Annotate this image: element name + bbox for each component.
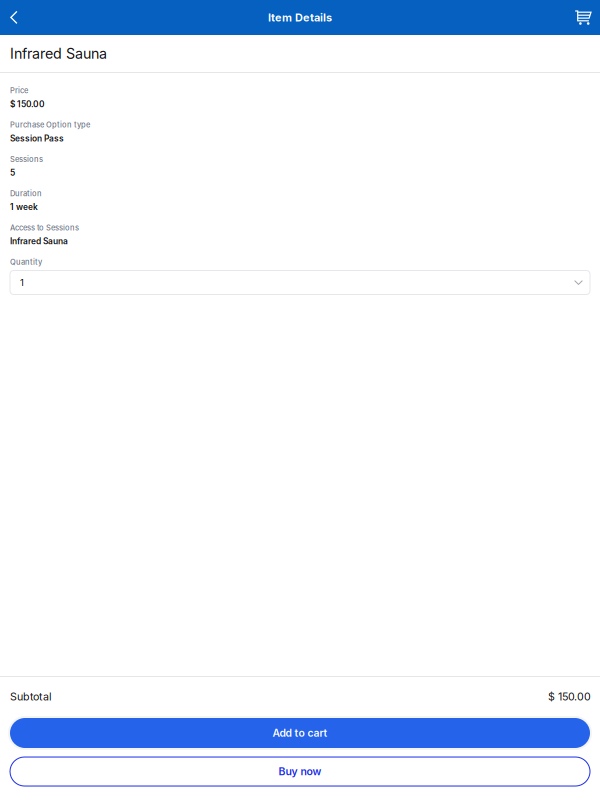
button[interactable]: Cart: [566, 0, 600, 35]
staticText: Subtotal: [10, 690, 52, 703]
staticText: Quantity: [10, 257, 42, 267]
button[interactable]: Add to cart: [8, 716, 592, 750]
staticText: Item Details: [268, 11, 332, 24]
button[interactable]: Back: [0, 0, 28, 35]
button[interactable]: Quantity: [10, 270, 590, 294]
staticText: Session Pass: [10, 133, 64, 143]
staticText: $ 150.00: [548, 690, 591, 703]
staticText: Access to Sessions: [10, 223, 79, 232]
staticText: 5: [10, 168, 15, 178]
staticText: Duration: [10, 189, 42, 198]
staticText: 1 week: [10, 202, 38, 212]
staticText: Purchase Option type: [10, 120, 90, 129]
staticText: Infrared Sauna: [10, 236, 68, 246]
staticText: $ 150.00: [10, 99, 45, 109]
staticText: Price: [10, 86, 28, 95]
button[interactable]: Buy now: [10, 757, 590, 786]
staticText: Sessions: [10, 155, 43, 164]
staticText: Infrared Sauna: [10, 45, 107, 62]
staticText: Add to cart: [272, 727, 327, 739]
staticText: Buy now: [278, 765, 321, 778]
staticText: 1: [20, 277, 24, 288]
